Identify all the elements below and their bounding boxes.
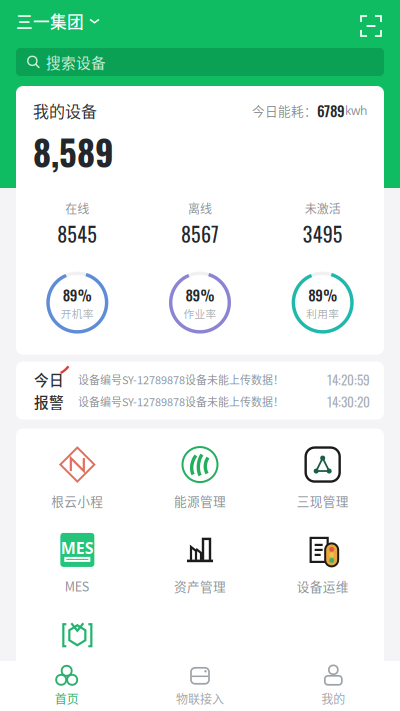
button[interactable]: 资产管理 xyxy=(139,520,261,605)
button[interactable]: 设备编号SY-12789878设备未能上传数据！ xyxy=(78,371,370,389)
button[interactable]: MES xyxy=(16,520,139,605)
button[interactable]: 首页 xyxy=(0,658,133,711)
staticText: 三现管理 xyxy=(297,492,349,510)
staticText: kwh xyxy=(345,103,367,118)
staticText: 8567 xyxy=(181,219,219,248)
staticText: 设备编号SY-12789878设备未能上传数据！ xyxy=(78,372,284,387)
button[interactable] xyxy=(261,605,384,690)
staticText: MES xyxy=(65,577,90,595)
staticText: 今日能耗： xyxy=(252,101,317,120)
button[interactable] xyxy=(139,605,261,690)
staticText: 搜索设备 xyxy=(46,51,106,73)
staticText: 我的设备 xyxy=(33,99,97,122)
staticText: 今日 xyxy=(34,369,64,390)
staticText: 89% xyxy=(63,284,92,306)
staticText: 作业率 xyxy=(183,306,216,321)
button[interactable]: 物联接入 xyxy=(133,658,267,711)
staticText: 能源管理 xyxy=(174,492,226,510)
staticText: 首页 xyxy=(55,690,79,707)
staticText: 89% xyxy=(308,284,337,306)
staticText: 未激活 xyxy=(305,199,341,217)
staticText: 89% xyxy=(185,284,214,306)
button[interactable]: 三一集团 xyxy=(16,6,100,40)
staticText: 物联接入 xyxy=(176,690,224,707)
staticText: 14:20:59 xyxy=(327,370,370,389)
staticText: 6789 xyxy=(317,100,345,121)
staticText: 8545 xyxy=(57,219,97,248)
button[interactable]: 设备运维 xyxy=(261,520,384,605)
staticText: 在线 xyxy=(65,199,89,217)
staticText: 离线 xyxy=(188,199,212,217)
staticText: 设备编号SY-12789878设备未能上传数据！ xyxy=(78,394,284,409)
staticText: 报警 xyxy=(34,391,64,412)
staticText: 我的 xyxy=(321,690,345,707)
staticText: 根云小程 xyxy=(51,492,103,510)
button[interactable]: 能源管理 xyxy=(139,435,261,520)
button[interactable]: 物联网关 xyxy=(16,605,139,690)
staticText: 利用率 xyxy=(306,306,339,321)
staticText: MES xyxy=(61,537,94,558)
button[interactable]: 三现管理 xyxy=(261,435,384,520)
staticText: 14:30:20 xyxy=(327,392,370,411)
button[interactable]: 扫一扫 xyxy=(358,10,384,36)
staticText: 设备运维 xyxy=(297,577,349,595)
button[interactable]: 根云小程 xyxy=(16,435,139,520)
staticText: 开机率 xyxy=(61,306,94,321)
button[interactable]: 设备编号SY-12789878设备未能上传数据！ xyxy=(78,393,370,411)
staticText: 物联网关 xyxy=(51,662,103,680)
staticText: 资产管理 xyxy=(174,577,226,595)
staticText: 8,589 xyxy=(33,126,114,178)
staticText: 3495 xyxy=(303,219,343,248)
staticText: 三一集团 xyxy=(16,9,84,33)
button[interactable]: 我的 xyxy=(267,658,400,711)
